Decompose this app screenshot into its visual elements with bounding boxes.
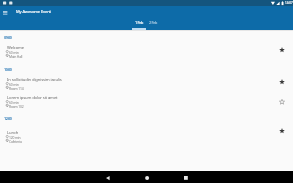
button[interactable] <box>277 45 287 55</box>
button[interactable] <box>180 173 192 183</box>
staticText: Lunch <box>7 130 19 136</box>
staticText: 09:00 <box>4 35 12 40</box>
staticText: Main Hall <box>9 54 23 59</box>
staticText: Cafeteria <box>9 139 22 144</box>
staticText: Room 114 <box>9 86 24 91</box>
button[interactable] <box>277 77 287 87</box>
button[interactable]: 2 Feb <box>146 18 161 30</box>
button[interactable] <box>1 8 9 16</box>
staticText: 10:00 <box>4 67 12 72</box>
staticText: 60 min <box>9 50 19 55</box>
staticText: 2 Feb <box>149 20 158 25</box>
button[interactable]: Lunch <box>0 130 293 145</box>
button[interactable] <box>277 97 287 107</box>
staticText: Room 102 <box>9 104 24 109</box>
staticText: 12:00 <box>4 116 12 121</box>
button[interactable]: 1 Feb <box>132 18 147 30</box>
staticText: Lorem ipsum dolor sit amet <box>7 95 58 101</box>
staticText: Welcome <box>7 45 25 51</box>
button[interactable]: In sollicitudin dignissim iaculis <box>0 77 293 92</box>
staticText: In sollicitudin dignissim iaculis <box>7 77 62 83</box>
staticText: 1 Feb <box>135 20 144 25</box>
button[interactable] <box>102 173 114 183</box>
staticText: My Awesome Event <box>16 9 51 14</box>
button[interactable] <box>277 126 287 136</box>
staticText: 120 min <box>9 135 21 140</box>
staticText: 60 min <box>9 82 19 87</box>
button[interactable] <box>141 173 153 183</box>
staticText: 60 min <box>9 100 19 105</box>
button[interactable]: Welcome <box>0 45 293 60</box>
button[interactable]: Lorem ipsum dolor sit amet <box>0 95 293 110</box>
staticText: 14:07 <box>285 1 293 5</box>
